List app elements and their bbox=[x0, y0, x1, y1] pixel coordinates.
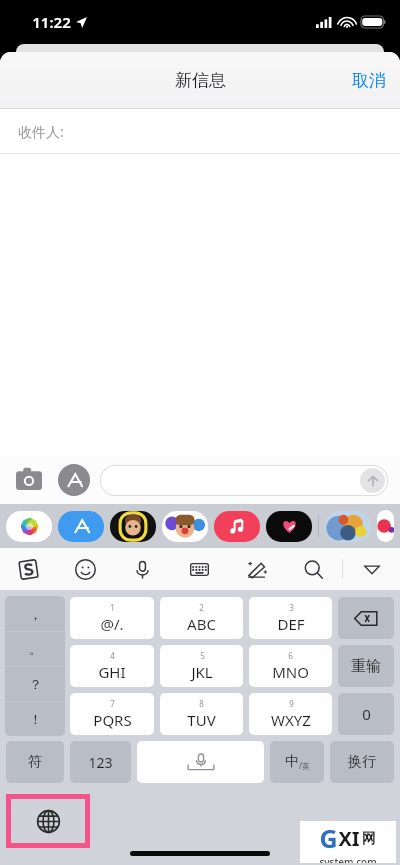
button[interactable]: Emoji bbox=[57, 548, 114, 590]
button[interactable]: 重输 bbox=[338, 645, 394, 687]
button[interactable]: 中 bbox=[270, 741, 324, 783]
staticText: 换行 bbox=[348, 753, 376, 771]
button[interactable]: ！ bbox=[5, 702, 65, 736]
button[interactable]: Search bbox=[285, 548, 342, 590]
button[interactable]: 取消 bbox=[338, 60, 400, 101]
button[interactable]: 6 bbox=[249, 645, 332, 687]
button[interactable]: 8 bbox=[160, 693, 243, 735]
button[interactable]: Space bbox=[137, 741, 264, 783]
button[interactable]: More stickers bbox=[377, 510, 394, 542]
staticText: 符 bbox=[28, 753, 42, 771]
staticText: XI bbox=[338, 825, 360, 852]
staticText: 1 bbox=[110, 602, 115, 613]
button[interactable]: 换行 bbox=[330, 741, 394, 783]
staticText: JKL bbox=[191, 662, 213, 682]
button[interactable]: 9 bbox=[249, 693, 332, 735]
button[interactable]: Hide keyboard bbox=[343, 548, 400, 590]
button[interactable]: App bbox=[58, 510, 104, 542]
staticText: WXYZ bbox=[271, 710, 311, 730]
staticText: 中 bbox=[285, 753, 299, 771]
staticText: /英 bbox=[299, 760, 310, 771]
button[interactable]: Voice input bbox=[114, 548, 171, 590]
button[interactable]: Keyboard layout bbox=[171, 548, 228, 590]
button[interactable]: Handwriting bbox=[228, 548, 285, 590]
button[interactable]: 。 bbox=[5, 632, 65, 666]
staticText: 2 bbox=[199, 602, 204, 613]
button[interactable]: App bbox=[266, 510, 312, 542]
staticText: 5 bbox=[200, 650, 205, 661]
button[interactable]: 5 bbox=[160, 645, 243, 687]
button[interactable]: 7 bbox=[70, 693, 154, 735]
staticText: 123 bbox=[88, 753, 113, 772]
button[interactable]: 0 bbox=[338, 693, 394, 735]
button[interactable]: Send bbox=[360, 468, 385, 493]
button[interactable]: ， bbox=[5, 596, 65, 631]
button[interactable]: Send bbox=[100, 465, 388, 496]
staticText: MNO bbox=[272, 662, 309, 682]
staticText: @/. bbox=[100, 614, 124, 634]
staticText: 。 bbox=[29, 641, 42, 657]
staticText: 收件人: bbox=[18, 122, 64, 141]
button[interactable]: App bbox=[110, 510, 156, 542]
button[interactable]: Delete bbox=[338, 597, 394, 639]
button[interactable]: 123 bbox=[70, 741, 131, 783]
button[interactable]: App bbox=[325, 510, 371, 542]
staticText: 7 bbox=[110, 698, 115, 709]
staticText: system.com bbox=[319, 855, 377, 863]
staticText: 重输 bbox=[351, 657, 381, 676]
button[interactable]: 符 bbox=[6, 741, 64, 783]
button[interactable]: 2 bbox=[160, 597, 243, 639]
button[interactable]: App bbox=[214, 510, 260, 542]
button[interactable]: 1 bbox=[70, 597, 154, 639]
staticText: ！ bbox=[29, 711, 42, 727]
staticText: 4 bbox=[110, 650, 115, 661]
staticText: 0 bbox=[362, 704, 371, 724]
staticText: ？ bbox=[29, 676, 42, 692]
button[interactable]: 4 bbox=[70, 645, 154, 687]
button[interactable]: App Store bbox=[58, 464, 90, 496]
button[interactable]: App bbox=[162, 510, 208, 542]
staticText: TUV bbox=[187, 710, 216, 730]
staticText: 取消 bbox=[352, 70, 386, 91]
staticText: ABC bbox=[187, 614, 216, 634]
staticText: 6 bbox=[288, 650, 293, 661]
staticText: ， bbox=[29, 606, 42, 622]
staticText: DEF bbox=[277, 614, 305, 634]
staticText: G bbox=[319, 821, 338, 855]
button[interactable]: Sogou bbox=[0, 548, 57, 590]
button[interactable]: ？ bbox=[5, 667, 65, 701]
staticText: 网 bbox=[362, 830, 376, 847]
staticText: 新信息 bbox=[175, 70, 226, 91]
button[interactable]: App bbox=[6, 510, 52, 542]
button[interactable]: Switch keyboard bbox=[11, 799, 85, 843]
button[interactable]: 收件人: bbox=[0, 109, 400, 153]
staticText: 9 bbox=[289, 698, 294, 709]
staticText: 8 bbox=[199, 698, 204, 709]
staticText: GHI bbox=[98, 662, 126, 682]
staticText: 3 bbox=[289, 602, 294, 613]
staticText: 11:22 bbox=[32, 12, 71, 32]
button[interactable]: 3 bbox=[249, 597, 332, 639]
staticText: PQRS bbox=[93, 710, 132, 730]
button[interactable]: Camera bbox=[12, 463, 46, 497]
